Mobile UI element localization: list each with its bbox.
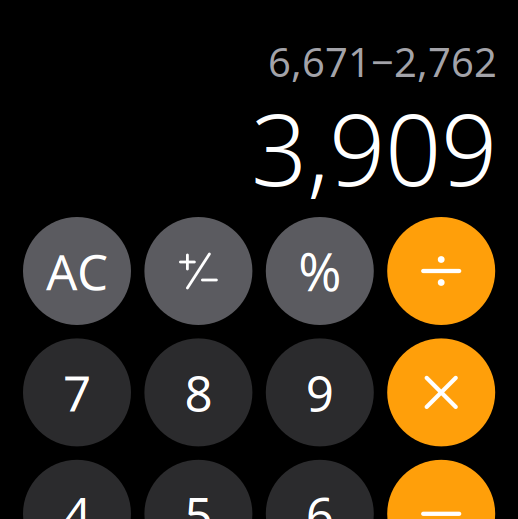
staticText: AC (46, 238, 108, 304)
button[interactable]: AC (23, 217, 131, 325)
button[interactable]: Plus minus (144, 217, 252, 325)
button[interactable]: Minus (387, 460, 495, 519)
staticText: 4 (63, 481, 91, 519)
staticText: 6 (306, 481, 334, 519)
button[interactable]: 8 (144, 338, 252, 446)
staticText: 3,909 (251, 82, 497, 213)
button[interactable]: 5 (144, 460, 252, 519)
button[interactable]: 6 (266, 460, 374, 519)
button[interactable]: 9 (266, 338, 374, 446)
staticText: 7 (63, 360, 91, 425)
button[interactable]: 4 (23, 460, 131, 519)
button[interactable]: 7 (23, 338, 131, 446)
button[interactable]: % (266, 217, 374, 325)
staticText: 9 (306, 360, 334, 425)
staticText: 6,671−2,762 (268, 35, 497, 88)
staticText: 5 (184, 481, 212, 519)
staticText: % (298, 236, 341, 306)
staticText: 8 (184, 360, 212, 425)
button[interactable]: Divide (387, 217, 495, 325)
button[interactable]: Multiply (387, 338, 495, 446)
